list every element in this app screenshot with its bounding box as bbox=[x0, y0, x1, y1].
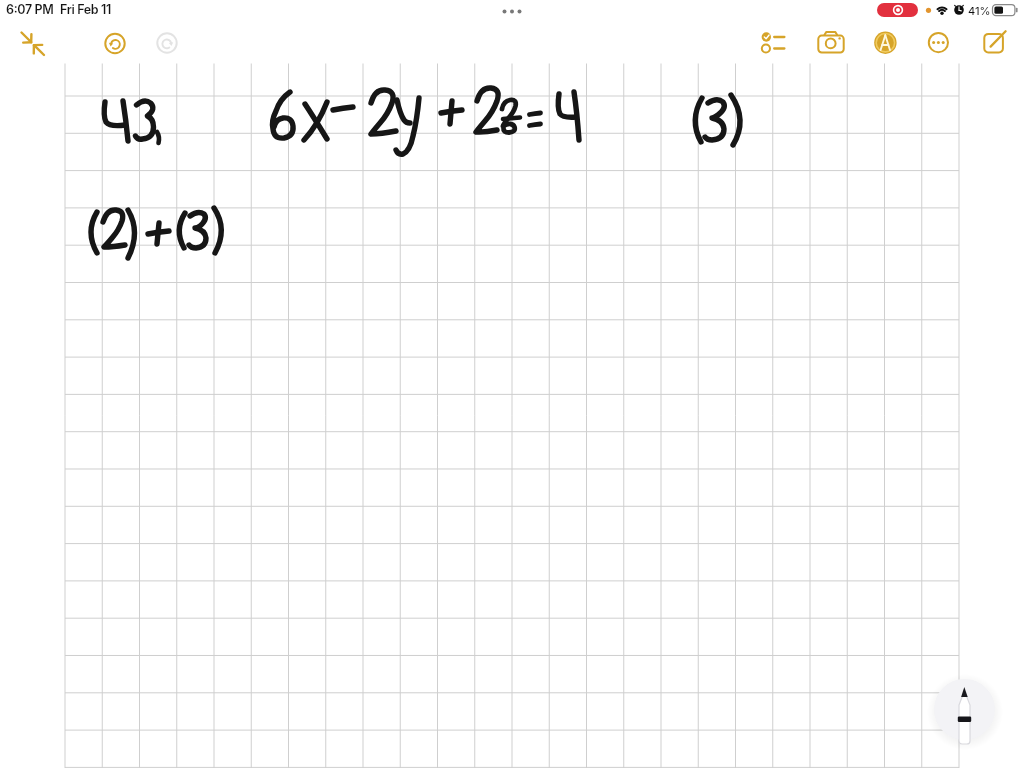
staticText: 6:07 PM bbox=[6, 2, 54, 17]
button[interactable] bbox=[757, 27, 789, 59]
button[interactable] bbox=[16, 28, 48, 60]
staticText: Fri Feb 11 bbox=[60, 2, 111, 17]
button[interactable] bbox=[869, 27, 901, 59]
staticText: 41% bbox=[968, 4, 991, 17]
button[interactable] bbox=[99, 28, 131, 60]
button[interactable] bbox=[978, 27, 1010, 59]
button[interactable] bbox=[815, 27, 847, 59]
button[interactable] bbox=[934, 679, 995, 740]
button[interactable] bbox=[922, 27, 954, 59]
button[interactable] bbox=[151, 28, 183, 60]
